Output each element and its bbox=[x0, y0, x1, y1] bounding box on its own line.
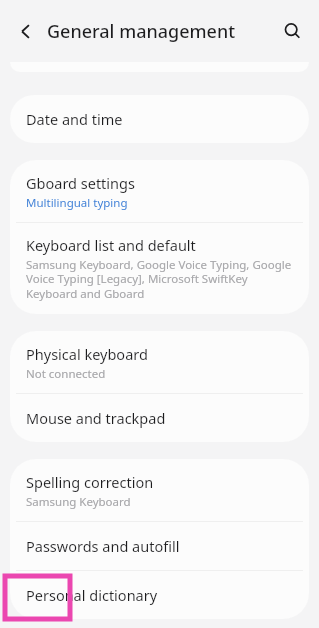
button[interactable]: Back bbox=[8, 14, 42, 48]
button[interactable]: Keyboard list and default bbox=[10, 223, 309, 314]
staticText: Passwords and autofill bbox=[26, 536, 180, 556]
button[interactable]: Passwords and autofill bbox=[10, 522, 309, 570]
staticText: Personal dictionary bbox=[26, 585, 158, 605]
staticText: Samsung Keyboard bbox=[26, 494, 131, 510]
staticText: Spelling correction bbox=[26, 472, 154, 492]
button[interactable]: Spelling correction bbox=[10, 459, 309, 521]
staticText: Date and time bbox=[26, 109, 123, 129]
button[interactable]: Gboard settings bbox=[10, 160, 309, 222]
staticText: Keyboard list and default bbox=[26, 235, 196, 255]
staticText: Gboard settings bbox=[26, 173, 135, 193]
button[interactable]: Mouse and trackpad bbox=[10, 394, 309, 442]
button[interactable]: Personal dictionary bbox=[10, 571, 309, 619]
staticText: Samsung Keyboard, Google Voice Typing, G… bbox=[26, 257, 293, 302]
staticText: Physical keyboard bbox=[26, 344, 148, 364]
button[interactable]: Physical keyboard bbox=[10, 331, 309, 393]
button[interactable]: Date and time bbox=[10, 95, 309, 143]
button[interactable]: Search bbox=[275, 14, 309, 48]
staticText: Not connected bbox=[26, 366, 106, 382]
staticText: Mouse and trackpad bbox=[26, 408, 166, 428]
staticText: Multilingual typing bbox=[26, 195, 128, 211]
staticText: General management bbox=[47, 19, 236, 44]
